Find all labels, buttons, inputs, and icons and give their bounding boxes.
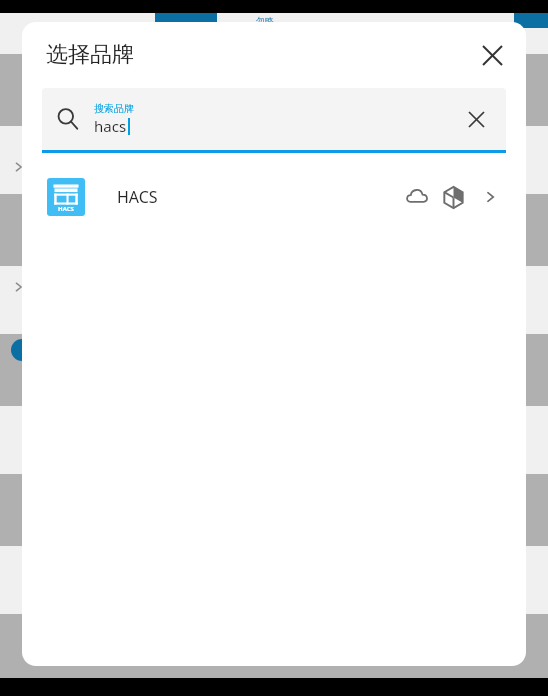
staticText: HACS [47, 205, 85, 213]
button[interactable]: Clear search [454, 97, 498, 141]
button[interactable]: HACS [22, 166, 526, 228]
button[interactable]: Close [468, 31, 516, 79]
button[interactable]: 搜索品牌 [42, 88, 506, 150]
staticText: 搜索品牌 [94, 102, 134, 115]
staticText: 勿略 [256, 15, 274, 26]
other: Cloud [400, 180, 434, 214]
staticText: hacs [94, 116, 127, 136]
other: Custom integration [436, 180, 470, 214]
other: Open [476, 181, 508, 213]
staticText: 选择品牌 [46, 41, 134, 69]
staticText: 配置 [177, 15, 195, 26]
staticText: HACS [117, 186, 158, 208]
